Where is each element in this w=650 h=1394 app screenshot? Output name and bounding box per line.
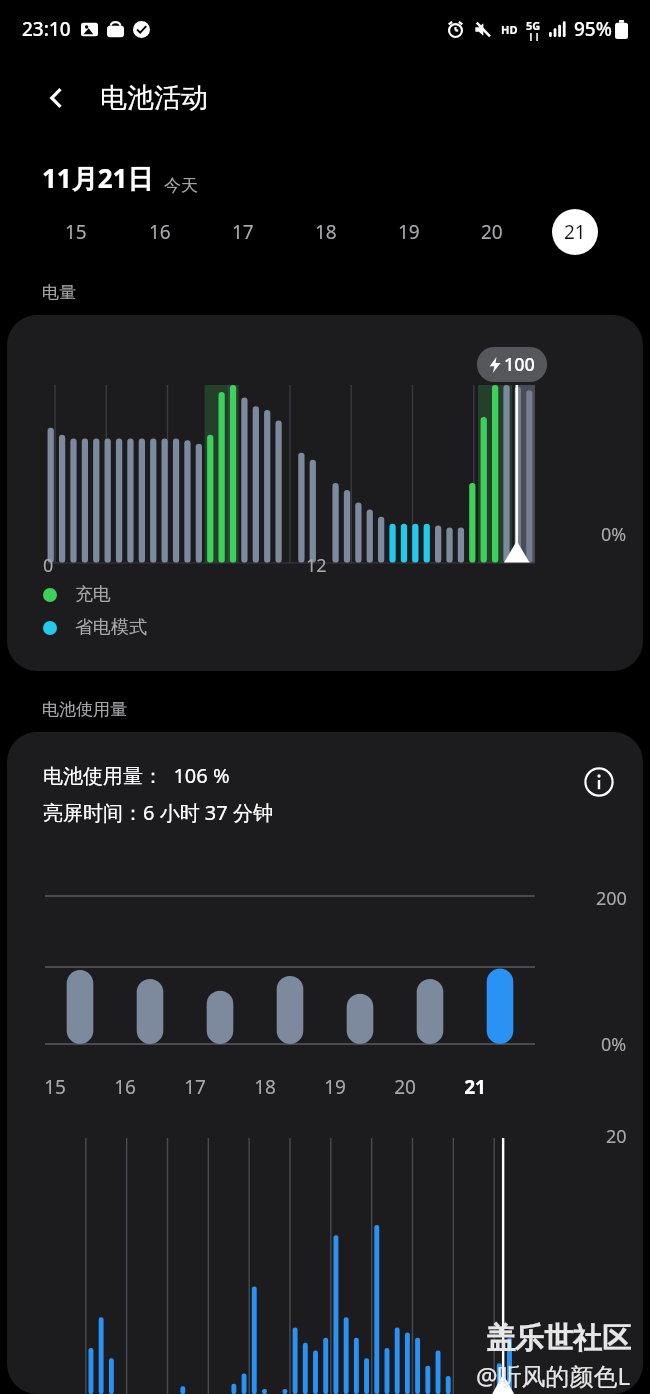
button[interactable]: Info	[581, 764, 617, 800]
staticText: 5G	[526, 18, 541, 33]
staticText: 18	[254, 1074, 276, 1100]
staticText: 12	[306, 553, 327, 578]
staticText: 电池使用量	[42, 699, 127, 720]
button[interactable]: Back	[34, 75, 80, 121]
staticText: 15	[65, 219, 87, 245]
staticText: 200	[596, 886, 627, 911]
staticText: @听风的颜色L	[476, 1359, 631, 1392]
button[interactable]: 16	[118, 196, 201, 268]
staticText: 19	[398, 219, 420, 245]
staticText: 0	[43, 553, 54, 578]
staticText: 20	[394, 1074, 416, 1100]
staticText: 20	[481, 219, 503, 245]
staticText: 17	[184, 1074, 206, 1100]
staticText: 省电模式	[75, 616, 147, 639]
staticText: 95%	[574, 16, 612, 42]
staticText: 16	[149, 219, 171, 245]
staticText: 0%	[601, 1032, 627, 1057]
staticText: 18	[315, 219, 337, 245]
staticText: 0%	[601, 522, 627, 547]
staticText: 15	[44, 1074, 66, 1100]
staticText: 21	[464, 1074, 486, 1100]
button[interactable]: 电池使用量： 106 %	[7, 732, 643, 1394]
staticText: 亮屏时间：6 小时 37 分钟	[43, 799, 273, 826]
staticText: 20	[606, 1124, 627, 1149]
staticText: 盖乐世社区	[486, 1320, 631, 1357]
button[interactable]: 17	[201, 196, 284, 268]
button[interactable]: 21	[533, 196, 616, 268]
staticText: 充电	[75, 583, 111, 606]
staticText: 16	[114, 1074, 136, 1100]
button[interactable]: 18	[284, 196, 367, 268]
staticText: 19	[324, 1074, 346, 1100]
staticText: 100	[504, 352, 535, 377]
staticText: 11月21日	[42, 160, 154, 196]
staticText: 今天	[164, 175, 198, 196]
staticText: HD	[501, 22, 518, 37]
staticText: 17	[232, 219, 254, 245]
staticText: 电量	[42, 282, 76, 303]
button[interactable]: 20	[450, 196, 533, 268]
button[interactable]: 0%	[7, 315, 643, 671]
staticText: 电池活动	[100, 81, 208, 115]
button[interactable]: 15	[34, 196, 118, 268]
staticText: 电池使用量： 106 %	[43, 762, 230, 789]
button[interactable]: 19	[367, 196, 450, 268]
staticText: 23:10	[22, 16, 71, 42]
staticText: 21	[564, 219, 586, 245]
